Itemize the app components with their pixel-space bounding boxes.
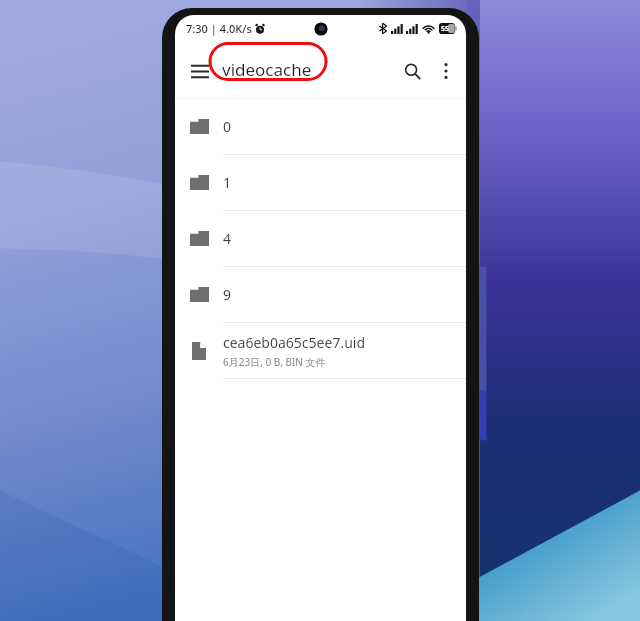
staticText: 6月23日, 0 B, BIN 文件 xyxy=(223,355,326,369)
button[interactable]: 9 xyxy=(175,267,466,323)
button[interactable]: cea6eb0a65c5ee7.uid xyxy=(175,323,466,379)
staticText: 1 xyxy=(223,173,232,192)
button[interactable]: 1 xyxy=(175,155,466,211)
button[interactable]: 4 xyxy=(175,211,466,267)
staticText: cea6eb0a65c5ee7.uid xyxy=(223,333,366,352)
staticText: 55 xyxy=(441,24,450,34)
staticText: videocache xyxy=(222,58,312,81)
button[interactable]: 0 xyxy=(175,99,466,155)
button[interactable]: Open navigation drawer xyxy=(180,51,220,91)
staticText: 0 xyxy=(223,117,232,136)
staticText: 9 xyxy=(223,285,232,304)
staticText: 4 xyxy=(223,229,232,248)
button[interactable]: Search xyxy=(392,51,432,91)
button[interactable]: More options xyxy=(426,51,466,91)
staticText: 7:30 | 4.0K/s xyxy=(186,21,252,36)
